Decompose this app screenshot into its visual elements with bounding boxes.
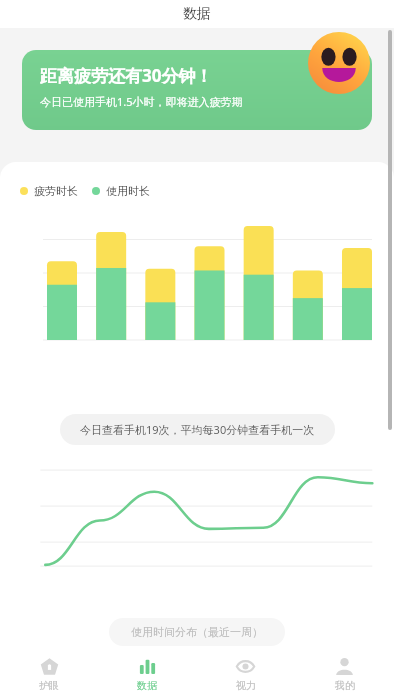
staticText: 视力: [236, 679, 256, 692]
button[interactable]: 距离疲劳还有30分钟！: [22, 50, 372, 130]
staticText: 数据: [137, 679, 157, 692]
button[interactable]: 我的: [295, 648, 394, 700]
button[interactable]: 护眼: [0, 648, 98, 700]
staticText: 我的: [335, 679, 355, 692]
staticText: 使用时间分布（最近一周）: [131, 625, 263, 639]
staticText: 今日查看手机19次，平均每30分钟查看手机一次: [80, 422, 315, 437]
button[interactable]: 数据: [98, 648, 196, 700]
staticText: 数据: [183, 5, 211, 23]
button[interactable]: 使用时间分布（最近一周）: [109, 618, 285, 646]
staticText: 距离疲劳还有30分钟！: [40, 64, 213, 87]
staticText: 护眼: [39, 679, 59, 692]
other: Happy face: [308, 32, 370, 94]
button[interactable]: 今日查看手机19次，平均每30分钟查看手机一次: [60, 414, 335, 445]
staticText: 今日已使用手机1.5小时，即将进入疲劳期: [40, 94, 243, 109]
staticText: 使用时长: [106, 184, 150, 198]
staticText: 疲劳时长: [34, 184, 78, 198]
button[interactable]: 视力: [196, 648, 295, 700]
